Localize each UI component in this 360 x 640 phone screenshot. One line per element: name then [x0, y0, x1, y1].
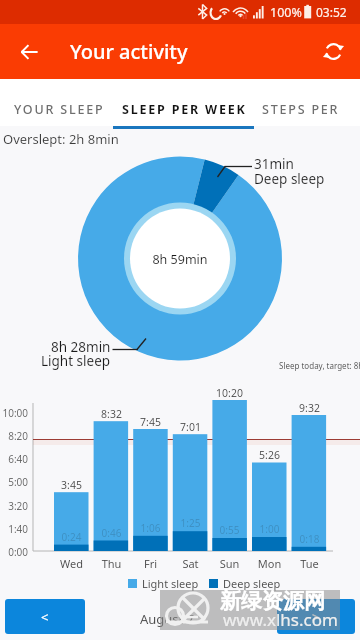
staticText: 7:01 — [173, 420, 208, 434]
staticText: 31min — [254, 155, 294, 173]
button[interactable]: Back — [11, 34, 46, 69]
staticText: 5:26 — [252, 448, 287, 462]
staticText: Light sleep — [142, 576, 199, 591]
staticText: 8h 59min — [120, 251, 240, 268]
staticText: 6:40 — [0, 452, 28, 466]
staticText: 0:18 — [292, 532, 327, 546]
staticText: < — [41, 608, 49, 626]
staticText: Your activity — [70, 38, 188, 65]
staticText: STEPS PER WEEK — [262, 101, 360, 118]
staticText: www.xlhs.com — [223, 608, 338, 631]
staticText: Sun — [212, 556, 247, 571]
staticText: August 7 — [140, 610, 195, 628]
button[interactable]: STEPS PER WEEK — [254, 84, 360, 126]
staticText: 1:25 — [173, 516, 208, 530]
staticText: Deep sleep — [254, 170, 325, 188]
staticText: 3:20 — [0, 499, 28, 513]
staticText: Wed — [54, 556, 89, 571]
staticText: 新绿资源网 — [220, 588, 325, 614]
button[interactable]: SLEEP PER WEEK — [113, 84, 254, 126]
staticText: SLEEP PER WEEK — [122, 101, 247, 118]
staticText: 03:52 — [316, 4, 347, 20]
button[interactable]: Refresh — [316, 34, 351, 69]
staticText: 10:00 — [0, 406, 28, 420]
staticText: 0:55 — [212, 523, 247, 537]
staticText: 3:45 — [54, 478, 89, 492]
staticText: 10:20 — [212, 386, 247, 400]
staticText: 0:24 — [54, 530, 89, 544]
staticText: YOUR SLEEP — [14, 101, 105, 118]
button[interactable]: YOUR SLEEP — [0, 84, 113, 126]
button[interactable]: Next day — [277, 599, 355, 634]
staticText: Fri — [133, 556, 168, 571]
staticText: Overslept: 2h 8min — [3, 130, 119, 148]
staticText: 0:46 — [94, 526, 129, 540]
staticText: Tue — [292, 556, 327, 571]
button[interactable]: Previous day — [5, 599, 85, 634]
staticText: 8:20 — [0, 429, 28, 443]
staticText: Mon — [252, 556, 287, 571]
staticText: 1:40 — [0, 522, 28, 536]
staticText: 0:00 — [0, 545, 28, 559]
staticText: 1:00 — [252, 522, 287, 536]
staticText: Thu — [94, 556, 129, 571]
staticText: 5:00 — [0, 475, 28, 489]
staticText: Sleep today, target: 8h — [279, 360, 360, 371]
staticText: 8h 28min — [51, 338, 111, 356]
staticText: Light sleep — [41, 352, 111, 370]
staticText: 7:45 — [133, 415, 168, 429]
staticText: 1:06 — [133, 521, 168, 535]
staticText: 8:32 — [94, 407, 129, 421]
staticText: 100% — [270, 4, 302, 21]
staticText: Sat — [173, 556, 208, 571]
staticText: 9:32 — [292, 401, 327, 415]
staticText: Deep sleep — [223, 576, 281, 591]
staticText: > — [312, 608, 320, 626]
